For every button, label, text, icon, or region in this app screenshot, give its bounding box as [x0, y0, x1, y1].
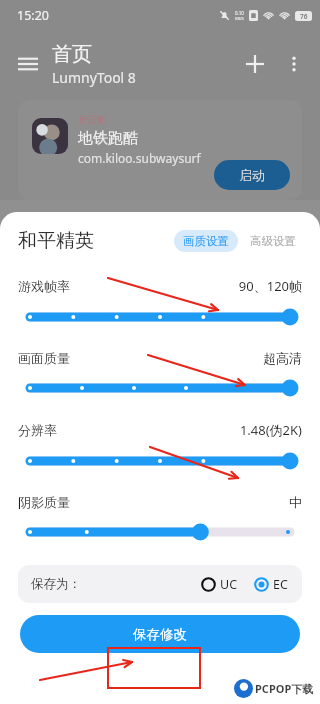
button[interactable]: 画质设置 — [174, 230, 238, 252]
staticText: 15:20 — [17, 7, 49, 24]
staticText: 未适配 — [78, 114, 107, 126]
button[interactable]: 高级设置 — [244, 230, 302, 252]
staticText: 保存修改 — [133, 626, 187, 643]
staticText: 高级设置 — [250, 234, 296, 248]
button[interactable]: EC — [252, 574, 290, 595]
staticText: 画质设置 — [183, 234, 229, 248]
staticText: 分辨率 — [18, 422, 57, 438]
staticText: 和平精英 — [18, 229, 94, 253]
staticText: KB/S — [235, 16, 244, 21]
button[interactable]: 阴影质量 slider — [0, 521, 320, 543]
button[interactable]: 未适配 — [18, 100, 302, 200]
button[interactable]: 启动 — [214, 160, 290, 190]
button[interactable]: 保存修改 — [20, 615, 300, 653]
staticText: 启动 — [239, 167, 265, 183]
staticText: 阴影质量 — [18, 494, 70, 510]
staticText: com.kiloo.subwaysurf — [78, 150, 201, 166]
staticText: 0.10 — [235, 10, 244, 16]
button[interactable]: UC — [199, 574, 240, 595]
staticText: 地铁跑酷 — [78, 129, 138, 148]
staticText: 画面质量 — [18, 350, 70, 366]
staticText: 游戏帧率 — [18, 278, 70, 294]
button[interactable]: 画面质量 slider — [0, 377, 320, 399]
button[interactable]: Add — [236, 45, 274, 83]
button[interactable]: Menu — [8, 44, 48, 84]
button[interactable]: 分辨率 slider — [0, 450, 320, 472]
staticText: 90、120帧 — [238, 277, 302, 295]
button[interactable]: 游戏帧率 slider — [0, 306, 320, 328]
staticText: UC — [220, 576, 238, 593]
staticText: LumnyTool 8 — [52, 68, 136, 87]
staticText: 中 — [289, 494, 302, 510]
button[interactable]: More options — [276, 46, 312, 82]
staticText: 首页 — [52, 42, 92, 67]
staticText: 超高清 — [263, 350, 302, 366]
staticText: 1.48(伪2K) — [239, 421, 302, 439]
staticText: EC — [273, 576, 288, 593]
staticText: 76 — [300, 12, 308, 21]
staticText: PCPOP下载 — [255, 681, 314, 696]
staticText: 保存为： — [31, 576, 81, 592]
